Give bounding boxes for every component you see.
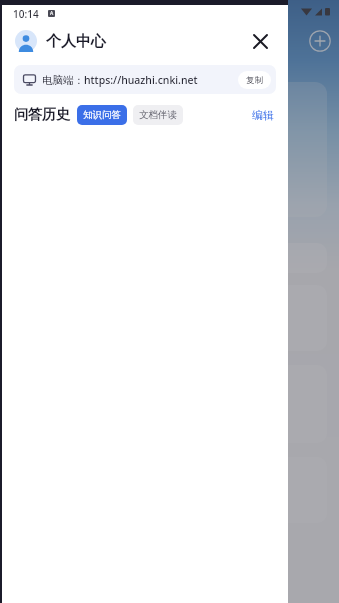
button[interactable]: 复制 bbox=[238, 71, 271, 89]
button[interactable]: 电脑端：https://huazhi.cnki.net bbox=[14, 65, 276, 94]
staticText: 10:14 bbox=[13, 7, 39, 21]
button[interactable]: 知识问答 bbox=[77, 105, 127, 125]
staticText: 编辑 bbox=[252, 108, 274, 122]
staticText: 复制 bbox=[246, 75, 263, 86]
staticText: 电脑端：https://huazhi.cnki.net bbox=[42, 73, 198, 87]
button[interactable]: 关闭 bbox=[245, 26, 275, 56]
staticText: 文档伴读 bbox=[139, 109, 177, 121]
button[interactable]: 编辑 bbox=[250, 106, 276, 124]
button[interactable]: 文档伴读 bbox=[133, 105, 183, 125]
staticText: A bbox=[50, 10, 54, 17]
staticText: 个人中心 bbox=[46, 32, 106, 51]
button[interactable]: 新建 bbox=[307, 28, 333, 54]
staticText: 问答历史 bbox=[14, 106, 70, 124]
staticText: 知识问答 bbox=[83, 109, 121, 121]
